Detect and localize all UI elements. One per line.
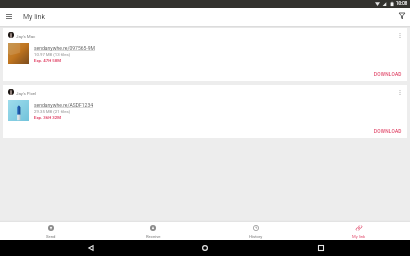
button[interactable]: DOWNLOAD (372, 70, 404, 80)
button[interactable]: DOWNLOAD (372, 127, 404, 137)
staticText: sendanywhe.re/097565-9M (34, 45, 95, 51)
staticText: Exp. 47H 58M (34, 58, 62, 63)
button[interactable]: Filter (396, 9, 408, 23)
staticText: 10.97 MB (13 files) (34, 52, 71, 57)
staticText: 29.35 MB (21 files) (34, 109, 71, 114)
staticText: Exp. 36H 32M (34, 115, 62, 120)
button[interactable]: Send (0, 222, 102, 240)
button[interactable]: Back (84, 241, 97, 254)
button[interactable]: Jay's Mac (3, 28, 407, 81)
staticText: My link (352, 234, 366, 239)
staticText: Jay's Pixel (16, 91, 37, 96)
button[interactable]: More options (395, 87, 405, 97)
button[interactable]: Jay's Pixel (3, 85, 407, 138)
button[interactable]: Recents (314, 241, 327, 254)
staticText: DOWNLOAD (374, 129, 402, 135)
staticText: Receive (146, 234, 161, 239)
button[interactable]: Menu (3, 9, 15, 23)
button[interactable]: My link (307, 222, 410, 240)
staticText: My link (23, 13, 45, 21)
button[interactable]: More options (395, 30, 405, 40)
button[interactable]: Home (198, 241, 211, 254)
button[interactable]: Receive (102, 222, 204, 240)
button[interactable]: History (204, 222, 307, 240)
staticText: sendanywhe.re/ASDF1234 (34, 102, 94, 108)
staticText: History (249, 234, 263, 239)
staticText: Jay's Mac (16, 34, 36, 39)
staticText: DOWNLOAD (374, 72, 402, 78)
staticText: Send (46, 234, 56, 239)
staticText: 10:08 (396, 1, 408, 6)
